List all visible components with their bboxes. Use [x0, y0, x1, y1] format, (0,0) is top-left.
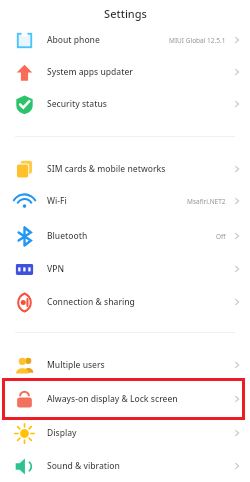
- button[interactable]: Always-on display & Lock screen: [0, 385, 250, 413]
- staticText: Msafiri.NET2: [187, 197, 226, 206]
- staticText: Settings: [104, 6, 147, 21]
- staticText: MIUI Global 12.5.1: [169, 36, 226, 45]
- staticText: Connection & sharing: [47, 296, 135, 308]
- button[interactable]: Bluetooth: [0, 222, 250, 250]
- button[interactable]: SIM cards & mobile networks: [0, 155, 250, 183]
- button[interactable]: Wi-Fi: [0, 187, 250, 215]
- staticText: SIM cards & mobile networks: [47, 163, 166, 175]
- button[interactable]: Connection & sharing: [0, 288, 250, 316]
- staticText: Always-on display & Lock screen: [47, 393, 178, 405]
- button[interactable]: System apps updater: [0, 58, 250, 86]
- staticText: VPN: [47, 263, 65, 275]
- button[interactable]: About phone: [0, 26, 250, 54]
- button[interactable]: Multiple users: [0, 351, 250, 379]
- staticText: System apps updater: [47, 66, 133, 78]
- button[interactable]: Display: [0, 419, 250, 447]
- button[interactable]: VPN: [0, 255, 250, 283]
- button[interactable]: Sound & vibration: [0, 452, 250, 480]
- staticText: Wi-Fi: [47, 195, 67, 207]
- staticText: Display: [47, 427, 77, 439]
- staticText: Security status: [47, 98, 107, 110]
- staticText: Bluetooth: [47, 230, 88, 242]
- staticText: About phone: [47, 34, 100, 46]
- button[interactable]: Security status: [0, 90, 250, 118]
- staticText: Off: [216, 232, 226, 241]
- staticText: Multiple users: [47, 359, 105, 371]
- staticText: Sound & vibration: [47, 460, 120, 472]
